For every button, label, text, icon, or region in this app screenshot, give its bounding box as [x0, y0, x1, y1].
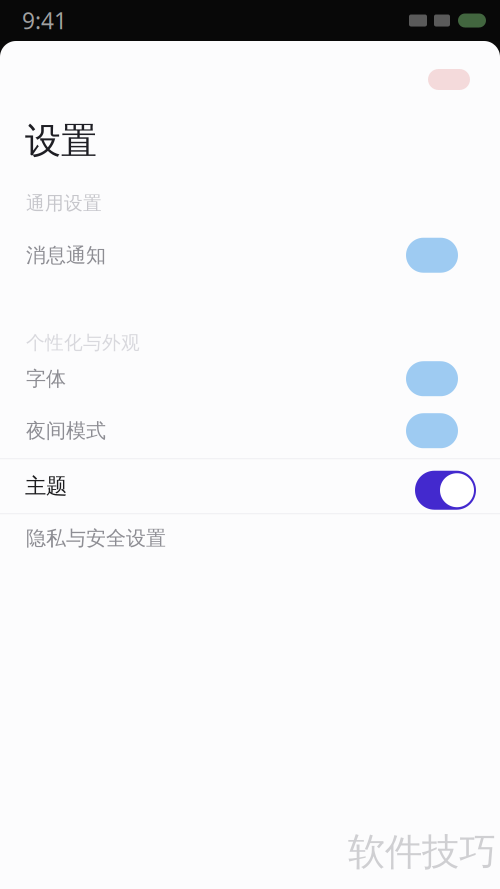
staticText: 消息通知 — [26, 243, 106, 267]
staticText: 软件技巧 — [348, 829, 496, 875]
button[interactable]: 主题 — [0, 459, 500, 513]
button[interactable]: 通用设置 — [0, 179, 500, 227]
button[interactable]: 字体 — [0, 354, 500, 403]
staticText: 9:41 — [22, 5, 67, 35]
staticText: 设置 — [25, 119, 97, 163]
staticText: 字体 — [26, 366, 66, 391]
staticText: 夜间模式 — [26, 418, 106, 443]
staticText: 隐私与安全设置 — [26, 526, 166, 550]
staticText: 主题 — [25, 473, 67, 499]
button[interactable]: 消息通知 — [0, 227, 500, 283]
button[interactable]: 个性化与外观 — [0, 331, 500, 354]
staticText: 个性化与外观 — [26, 331, 140, 354]
staticText: 通用设置 — [26, 192, 102, 215]
button[interactable]: 隐私与安全设置 — [0, 514, 500, 562]
button[interactable]: 夜间模式 — [0, 403, 500, 458]
